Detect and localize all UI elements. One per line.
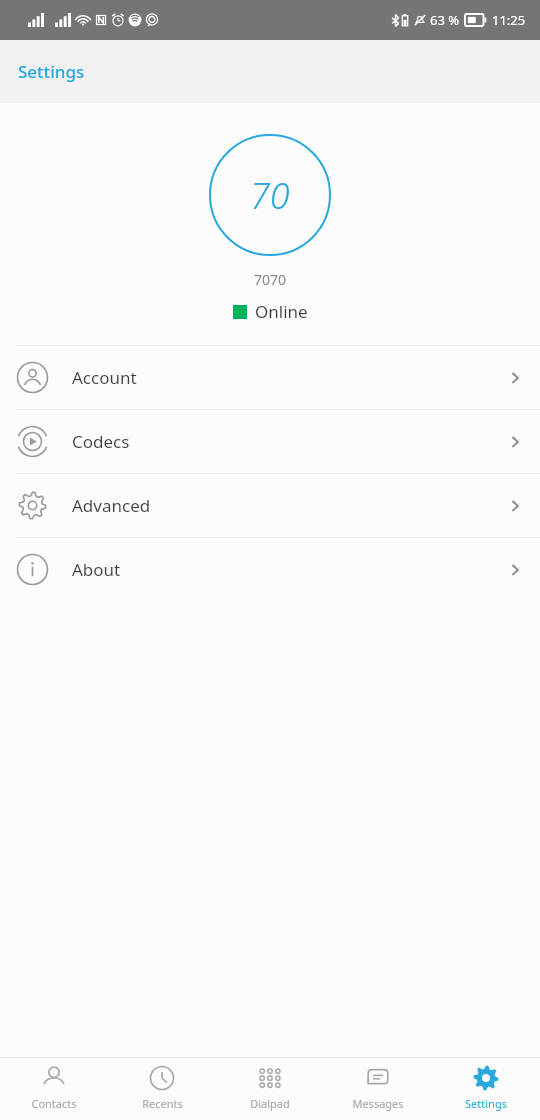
staticText: Settings	[465, 1096, 507, 1111]
button[interactable]: Contacts	[0, 1058, 108, 1120]
button[interactable]: Recents	[108, 1058, 216, 1120]
button[interactable]: Account	[0, 346, 540, 409]
staticText: Dialpad	[250, 1096, 290, 1111]
staticText: Messages	[352, 1096, 404, 1111]
staticText: 7070	[254, 270, 287, 289]
button[interactable]: Messages	[324, 1058, 432, 1120]
staticText: Recents	[142, 1096, 183, 1111]
staticText: Settings	[18, 60, 85, 83]
button[interactable]: Settings	[432, 1058, 540, 1120]
staticText: Codecs	[72, 430, 130, 453]
staticText: Contacts	[31, 1096, 77, 1111]
button[interactable]: Dialpad	[216, 1058, 324, 1120]
staticText: 11:25	[492, 11, 526, 29]
staticText: About	[72, 558, 121, 581]
button[interactable]: Codecs	[0, 410, 540, 473]
button[interactable]: Advanced	[0, 474, 540, 537]
staticText: 70	[250, 171, 290, 220]
staticText: Account	[72, 366, 137, 389]
button[interactable]: About	[0, 538, 540, 601]
staticText: 63 %	[430, 11, 460, 29]
staticText: Advanced	[72, 494, 151, 517]
staticText: Online	[255, 300, 308, 323]
